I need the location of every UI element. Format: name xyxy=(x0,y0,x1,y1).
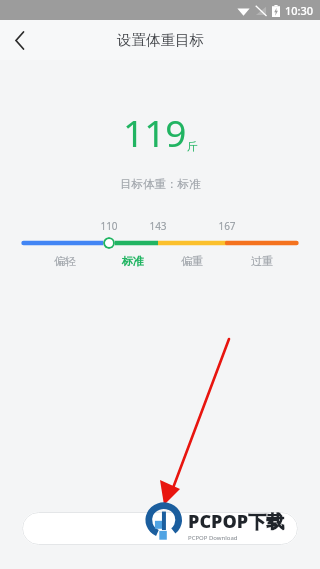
staticText: 110 xyxy=(100,219,118,233)
staticText: 143 xyxy=(149,219,167,233)
staticText: PCPOP Download xyxy=(188,534,238,542)
button[interactable]: 偏重 xyxy=(173,254,211,268)
button[interactable]: 偏轻 xyxy=(46,254,84,268)
button[interactable]: 过重 xyxy=(243,254,281,268)
button[interactable]: Back xyxy=(0,20,40,60)
staticText: 167 xyxy=(218,219,236,233)
button[interactable]: 标准 xyxy=(114,254,152,268)
staticText: 设置体重目标 xyxy=(117,31,204,49)
button[interactable]: Confirm xyxy=(22,512,298,545)
staticText: 10:30 xyxy=(285,3,314,18)
staticText: 偏重 xyxy=(181,254,203,268)
staticText: 标准 xyxy=(122,254,144,268)
staticText: 119 xyxy=(123,107,187,157)
staticText: 目标体重：标准 xyxy=(120,177,201,191)
staticText: 过重 xyxy=(251,254,273,268)
staticText: 斤 xyxy=(187,139,198,153)
staticText: PCPOP下载 xyxy=(188,509,285,534)
staticText: 偏轻 xyxy=(54,254,76,268)
button[interactable]: Weight slider xyxy=(103,237,115,249)
